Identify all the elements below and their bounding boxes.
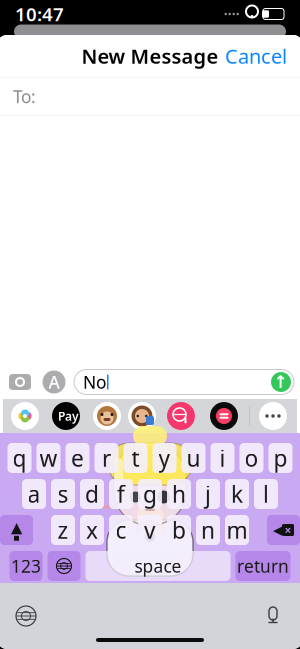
button[interactable]: n xyxy=(196,515,220,545)
staticText: x xyxy=(86,515,98,545)
staticText: r xyxy=(102,443,111,473)
button[interactable]: Next keyboard xyxy=(47,551,80,581)
staticText: f xyxy=(117,479,125,509)
staticText: w xyxy=(39,443,57,473)
staticText: ◀ xyxy=(273,523,282,537)
staticText: o xyxy=(244,443,258,473)
staticText: z xyxy=(57,515,68,545)
button[interactable]: return xyxy=(235,551,290,581)
staticText: To: xyxy=(13,85,36,108)
button[interactable]: Send xyxy=(271,372,291,392)
button[interactable]: Memoji xyxy=(128,402,156,430)
button[interactable]: r xyxy=(94,443,118,473)
button[interactable]: j xyxy=(196,479,220,509)
staticText: h xyxy=(172,479,186,509)
button[interactable]: space xyxy=(85,551,230,581)
staticText: v xyxy=(144,515,156,545)
staticText: a xyxy=(27,479,40,509)
staticText: Pay xyxy=(58,408,79,424)
button[interactable]: h xyxy=(167,479,191,509)
button[interactable]: Shift xyxy=(0,515,33,545)
button[interactable]: Apple Pay xyxy=(46,402,86,430)
staticText: ↑ xyxy=(273,372,288,392)
staticText: p xyxy=(273,443,287,473)
button[interactable]: m xyxy=(225,515,249,545)
button[interactable]: Dictate xyxy=(252,595,294,637)
button[interactable]: e xyxy=(65,443,89,473)
button[interactable]: a xyxy=(22,479,46,509)
button[interactable]: More apps xyxy=(257,402,289,430)
staticText: b xyxy=(172,515,186,545)
staticText: g xyxy=(143,479,157,509)
button[interactable]: w xyxy=(36,443,60,473)
button[interactable]: k xyxy=(225,479,249,509)
staticText: return xyxy=(237,554,289,577)
staticText: l xyxy=(263,479,269,509)
button[interactable]: c xyxy=(109,515,133,545)
button[interactable]: b xyxy=(167,515,191,545)
staticText: ▲ xyxy=(11,519,22,536)
staticText: New Message xyxy=(81,43,218,69)
button[interactable]: d xyxy=(80,479,104,509)
staticText: A xyxy=(48,370,59,393)
button[interactable]: v xyxy=(138,515,162,545)
staticText: space xyxy=(134,554,181,577)
button[interactable]: Image search xyxy=(163,402,199,430)
staticText: × xyxy=(284,522,291,538)
staticText: i xyxy=(219,443,225,473)
staticText: c xyxy=(115,515,126,545)
staticText: t xyxy=(131,443,139,473)
button[interactable]: g xyxy=(138,479,162,509)
button[interactable]: u xyxy=(181,443,205,473)
button[interactable]: x xyxy=(80,515,104,545)
staticText: q xyxy=(12,443,26,473)
staticText: 10:47 xyxy=(15,2,64,26)
staticText: m xyxy=(226,515,247,545)
button[interactable]: y xyxy=(152,443,176,473)
button[interactable]: Cancel xyxy=(215,35,297,77)
staticText: n xyxy=(201,515,215,545)
staticText: k xyxy=(231,479,243,509)
button[interactable]: 123 xyxy=(9,551,42,581)
button[interactable]: p xyxy=(268,443,292,473)
button[interactable]: Memoji xyxy=(93,402,121,430)
staticText: y xyxy=(158,443,170,473)
staticText: j xyxy=(205,479,211,509)
button[interactable]: Photos xyxy=(11,402,39,430)
button[interactable]: s xyxy=(51,479,75,509)
button[interactable]: App Store xyxy=(41,370,67,394)
button[interactable]: Keyboards xyxy=(6,596,46,636)
staticText: 123 xyxy=(11,554,41,577)
button[interactable]: i xyxy=(210,443,234,473)
button[interactable]: Music xyxy=(206,402,242,430)
button[interactable]: l xyxy=(254,479,278,509)
button[interactable]: f xyxy=(109,479,133,509)
staticText: s xyxy=(57,479,68,509)
staticText: Cancel xyxy=(225,43,287,69)
button[interactable]: z xyxy=(51,515,75,545)
staticText: e xyxy=(71,443,84,473)
button[interactable]: o xyxy=(239,443,263,473)
button[interactable]: t xyxy=(123,443,147,473)
staticText: u xyxy=(186,443,200,473)
button[interactable]: q xyxy=(7,443,31,473)
staticText: d xyxy=(85,479,99,509)
button[interactable]: Camera xyxy=(6,370,34,394)
staticText: No xyxy=(83,370,106,393)
button[interactable]: Delete xyxy=(267,515,300,545)
